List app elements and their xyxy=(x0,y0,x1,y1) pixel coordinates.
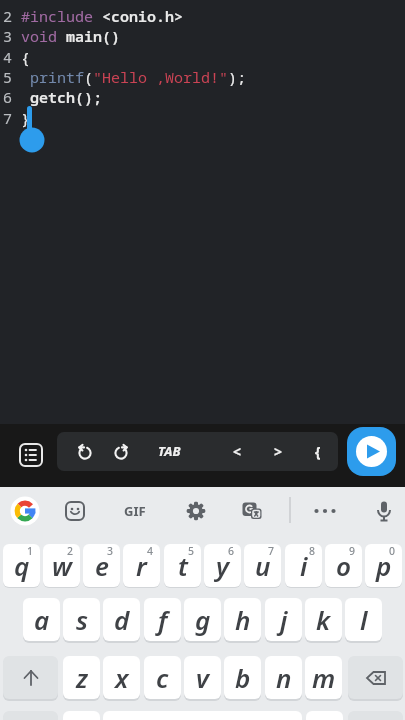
button[interactable]: n xyxy=(265,656,302,699)
button[interactable]: > xyxy=(263,436,293,466)
button[interactable]: u xyxy=(244,544,281,587)
staticText: 8 xyxy=(309,544,316,558)
button[interactable]: z xyxy=(63,656,100,699)
staticText: c xyxy=(156,660,169,695)
button[interactable] xyxy=(348,656,403,699)
staticText: < xyxy=(233,442,242,461)
button[interactable]: < xyxy=(222,436,252,466)
button[interactable] xyxy=(63,711,100,720)
button[interactable]: c xyxy=(144,656,181,699)
button[interactable]: k xyxy=(305,598,342,641)
button[interactable]: s xyxy=(63,598,100,641)
button[interactable] xyxy=(310,496,340,526)
button[interactable]: t xyxy=(164,544,201,587)
button[interactable]: r xyxy=(123,544,160,587)
button[interactable] xyxy=(369,496,399,526)
staticText: 7 } xyxy=(3,108,31,128)
button[interactable]: m xyxy=(305,656,342,699)
button[interactable]: y xyxy=(204,544,241,587)
button[interactable]: o xyxy=(325,544,362,587)
button[interactable]: TAB xyxy=(148,436,190,466)
staticText: d xyxy=(114,602,130,637)
staticText: 9 xyxy=(349,544,356,558)
staticText: v xyxy=(196,660,209,695)
staticText: k xyxy=(316,602,331,637)
staticText: 2 xyxy=(67,544,74,558)
button[interactable]: w xyxy=(43,544,80,587)
staticText: p xyxy=(376,548,392,583)
button[interactable]: f xyxy=(144,598,181,641)
staticText: > xyxy=(274,442,283,461)
staticText: u xyxy=(255,548,271,583)
button[interactable]: x xyxy=(103,656,140,699)
button[interactable] xyxy=(14,438,48,472)
staticText: 3 void main() xyxy=(3,26,121,46)
staticText: e xyxy=(95,548,109,583)
button[interactable] xyxy=(106,436,136,466)
staticText: w xyxy=(52,548,72,583)
staticText: 5 printf("Hello ,World!"); xyxy=(3,67,247,87)
staticText: 1 xyxy=(27,544,34,558)
staticText: z xyxy=(76,660,88,695)
button[interactable]: b xyxy=(224,656,261,699)
staticText: TAB xyxy=(158,442,181,460)
staticText: l xyxy=(360,602,368,637)
staticText: o xyxy=(336,548,352,583)
staticText: r xyxy=(136,548,147,583)
staticText: 4 { xyxy=(3,47,31,67)
staticText: 2 #include <conio.h> xyxy=(3,6,184,26)
button[interactable]: { xyxy=(303,436,333,466)
staticText: s xyxy=(76,602,88,637)
staticText: 3 xyxy=(107,544,114,558)
staticText: q xyxy=(14,548,30,583)
button[interactable]: l xyxy=(345,598,382,641)
button[interactable] xyxy=(60,496,90,526)
staticText: GIF xyxy=(124,502,146,520)
button[interactable]: d xyxy=(103,598,140,641)
button[interactable]: p xyxy=(365,544,402,587)
button[interactable]: i xyxy=(285,544,322,587)
button[interactable] xyxy=(237,496,267,526)
staticText: t xyxy=(178,548,188,583)
staticText: { xyxy=(315,442,321,461)
button[interactable]: q xyxy=(3,544,40,587)
staticText: i xyxy=(300,548,308,583)
staticText: 5 xyxy=(188,544,195,558)
staticText: 0 xyxy=(389,544,396,558)
staticText: y xyxy=(216,548,229,583)
staticText: g xyxy=(195,602,211,637)
button[interactable] xyxy=(181,496,211,526)
staticText: 6 getch(); xyxy=(3,87,103,107)
staticText: h xyxy=(235,602,251,637)
staticText: 6 xyxy=(228,544,235,558)
button[interactable] xyxy=(10,496,40,526)
staticText: a xyxy=(34,602,50,637)
button[interactable]: GIF xyxy=(115,496,155,526)
staticText: j xyxy=(280,602,288,637)
button[interactable] xyxy=(306,711,343,720)
staticText: 7 xyxy=(268,544,275,558)
button[interactable] xyxy=(347,427,396,476)
button[interactable] xyxy=(70,436,100,466)
staticText: b xyxy=(235,660,251,695)
staticText: f xyxy=(158,602,168,637)
button[interactable]: a xyxy=(23,598,60,641)
button[interactable]: j xyxy=(265,598,302,641)
staticText: x xyxy=(115,660,129,695)
staticText: 4 xyxy=(147,544,154,558)
button[interactable]: e xyxy=(83,544,120,587)
staticText: m xyxy=(312,660,336,695)
button[interactable]: h xyxy=(224,598,261,641)
button[interactable] xyxy=(3,656,58,699)
staticText: n xyxy=(276,660,292,695)
button[interactable]: v xyxy=(184,656,221,699)
button[interactable]: g xyxy=(184,598,221,641)
